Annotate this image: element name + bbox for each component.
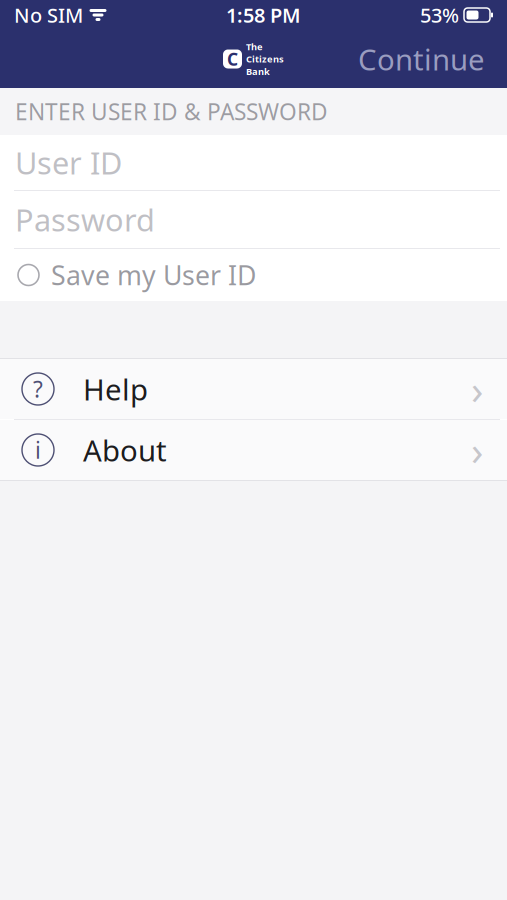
staticText: Password	[15, 199, 155, 240]
staticText: 1:58 PM	[226, 2, 301, 28]
staticText: Help	[83, 369, 148, 408]
staticText: The	[246, 40, 263, 53]
staticText: C	[227, 47, 238, 70]
staticText: About	[83, 430, 167, 469]
staticText: 53%	[420, 2, 459, 28]
button[interactable]: Continue	[342, 29, 501, 88]
staticText: User ID	[15, 142, 122, 183]
staticText: ›	[471, 423, 483, 476]
staticText: ›	[471, 362, 483, 415]
button[interactable]: Help	[0, 359, 507, 419]
staticText: ENTER USER ID & PASSWORD	[15, 96, 328, 126]
button[interactable]: About	[0, 420, 507, 480]
staticText: No SIM	[14, 2, 83, 28]
staticText: Continue	[358, 39, 485, 78]
staticText: Save my User ID	[51, 257, 256, 293]
button[interactable]: Save my User ID	[0, 249, 507, 301]
button[interactable]: Password	[0, 191, 507, 248]
button[interactable]: User ID	[0, 135, 507, 190]
staticText: ?	[33, 374, 43, 404]
staticText: Bank	[246, 65, 270, 78]
staticText: Citizens	[246, 53, 284, 65]
staticText: i	[35, 435, 41, 465]
